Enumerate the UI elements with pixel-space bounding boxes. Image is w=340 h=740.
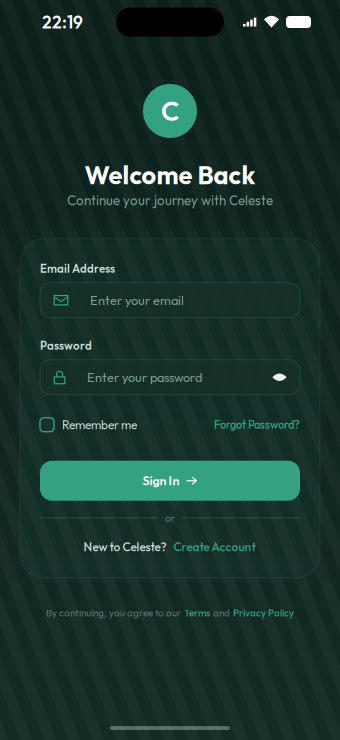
staticText: C [161, 94, 179, 128]
staticText: Terms [184, 607, 210, 619]
staticText: and [213, 607, 230, 619]
staticText: Enter your email [90, 292, 184, 308]
staticText: Remember me [62, 417, 137, 432]
staticText: New to Celeste? [83, 539, 166, 554]
staticText: Email Address [40, 261, 115, 276]
staticText: Create Account [173, 539, 256, 554]
staticText: Continue your journey with Celeste [67, 192, 273, 209]
staticText: Sign In [142, 473, 179, 489]
staticText: Privacy Policy [233, 607, 294, 619]
button[interactable]: Privacy Policy [233, 607, 294, 619]
staticText: Welcome Back [84, 159, 255, 191]
staticText: Forgot Password? [214, 418, 300, 432]
staticText: 22:19 [42, 11, 83, 33]
button[interactable]: Create Account [166, 539, 256, 554]
button[interactable]: Forgot Password? [214, 417, 300, 433]
button[interactable]: Sign In [40, 461, 300, 501]
button[interactable]: Remember me [40, 417, 137, 433]
button[interactable]: Terms [184, 607, 210, 619]
staticText: By continuing, you agree to our [46, 607, 181, 619]
staticText: Password [40, 338, 92, 353]
staticText: Enter your password [87, 369, 202, 385]
button[interactable]: Show password [272, 372, 287, 383]
staticText: or [165, 511, 175, 524]
